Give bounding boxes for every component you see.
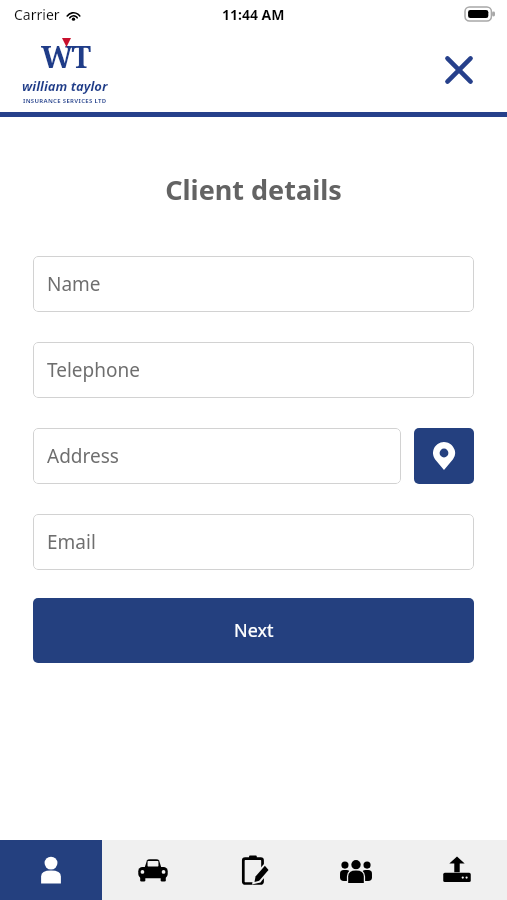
staticText: Name [47, 271, 101, 297]
button[interactable]: Name [33, 256, 474, 312]
button[interactable]: Telephone [33, 342, 474, 398]
button[interactable]: Address [33, 428, 401, 484]
staticText: william taylor [22, 77, 108, 95]
button[interactable]: Pick location on map [414, 428, 474, 484]
button[interactable]: Client details [0, 840, 102, 900]
staticText: Email [47, 529, 96, 555]
button[interactable]: Next [33, 598, 474, 663]
button[interactable]: Passengers [305, 840, 406, 900]
button[interactable]: Email [33, 514, 474, 570]
button[interactable]: Upload [406, 840, 507, 900]
staticText: Address [47, 443, 119, 469]
button[interactable]: Close [433, 44, 485, 96]
staticText: Client details [0, 171, 507, 208]
button[interactable]: Claim form [204, 840, 305, 900]
button[interactable]: Vehicle [102, 840, 204, 900]
staticText: Carrier [14, 5, 60, 24]
staticText: Next [234, 618, 274, 643]
staticText: Telephone [47, 357, 140, 383]
staticText: 11:44 AM [222, 5, 285, 24]
staticText: WT [41, 36, 90, 77]
staticText: INSURANCE SERVICES LTD [23, 97, 107, 105]
